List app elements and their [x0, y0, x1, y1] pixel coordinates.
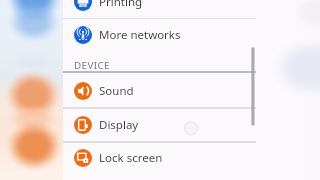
staticText: Printing [99, 0, 143, 10]
button[interactable]: Sound [63, 74, 256, 107]
staticText: More networks [99, 27, 181, 43]
button[interactable]: More networks [63, 18, 256, 51]
staticText: Sound [99, 83, 134, 99]
staticText: DEVICE [74, 59, 110, 72]
button[interactable]: Printing [63, 0, 256, 18]
staticText: Display [99, 117, 139, 133]
button[interactable]: Lock screen [63, 141, 256, 174]
staticText: Lock screen [99, 150, 163, 166]
button[interactable]: Display [63, 108, 256, 141]
